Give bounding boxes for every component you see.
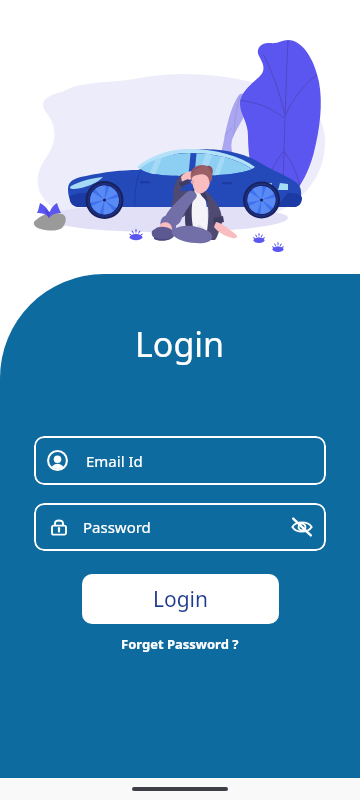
button[interactable]: Forget Password ? bbox=[117, 631, 243, 657]
staticText: Login bbox=[135, 321, 225, 367]
button[interactable]: Show password bbox=[291, 516, 313, 538]
button[interactable]: Login bbox=[82, 574, 279, 624]
staticText: Password bbox=[83, 517, 151, 537]
button[interactable]: Password bbox=[34, 503, 326, 551]
staticText: Forget Password ? bbox=[121, 635, 239, 653]
staticText: Login bbox=[153, 585, 209, 614]
staticText: Email Id bbox=[86, 451, 143, 471]
button[interactable]: Email Id bbox=[34, 436, 326, 485]
